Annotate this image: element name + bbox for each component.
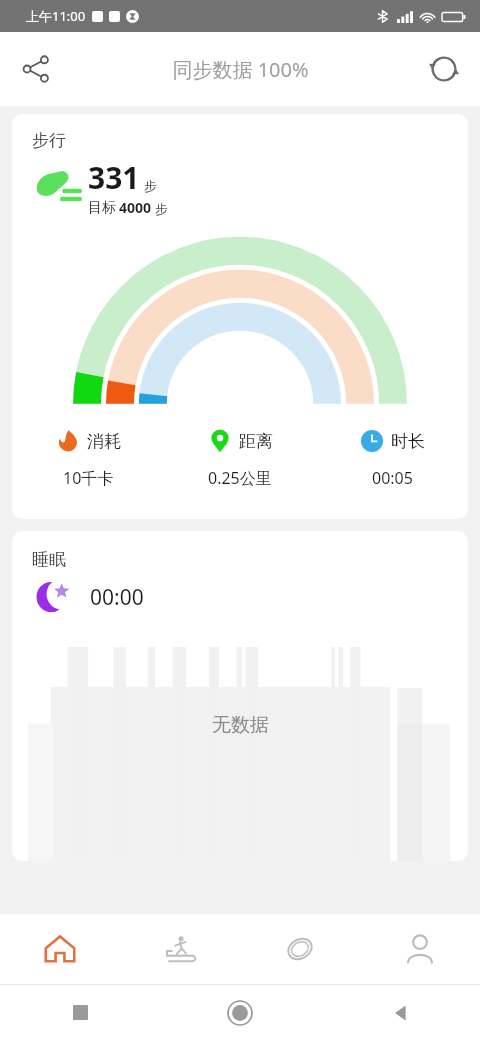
staticText: 时长 bbox=[391, 431, 425, 452]
staticText: 0.25公里 bbox=[208, 467, 272, 489]
button[interactable]: Device bbox=[240, 914, 360, 984]
staticText: 无数据 bbox=[212, 713, 269, 737]
button[interactable]: 距离 bbox=[164, 429, 316, 489]
button[interactable]: Home bbox=[0, 914, 120, 984]
staticText: 同步数据 100% bbox=[172, 56, 309, 83]
button[interactable]: 睡眠 bbox=[12, 531, 468, 861]
button[interactable]: Recents bbox=[73, 1005, 88, 1020]
button[interactable]: Home bbox=[228, 1001, 252, 1025]
staticText: 目标 bbox=[88, 199, 116, 217]
button[interactable]: 步行 bbox=[12, 114, 468, 519]
staticText: 4000 bbox=[119, 198, 152, 217]
staticText: 消耗 bbox=[87, 431, 121, 452]
button[interactable]: 消耗 bbox=[12, 429, 164, 489]
staticText: 10千卡 bbox=[63, 467, 114, 489]
button[interactable]: Profile bbox=[360, 914, 480, 984]
staticText: 睡眠 bbox=[32, 549, 66, 570]
button[interactable]: Share bbox=[10, 43, 62, 95]
staticText: 00:00 bbox=[90, 583, 144, 612]
staticText: 00:05 bbox=[372, 467, 413, 489]
staticText: 距离 bbox=[239, 431, 273, 452]
button[interactable]: Back bbox=[390, 1003, 410, 1023]
button[interactable]: 时长 bbox=[316, 429, 468, 489]
staticText: 步行 bbox=[32, 130, 66, 151]
staticText: 331 bbox=[88, 157, 140, 198]
staticText: 步 bbox=[155, 201, 168, 217]
staticText: 步 bbox=[144, 178, 157, 194]
button[interactable]: Sync bbox=[418, 43, 470, 95]
staticText: 上午11:00 bbox=[26, 7, 86, 25]
button[interactable]: Workout bbox=[120, 914, 240, 984]
